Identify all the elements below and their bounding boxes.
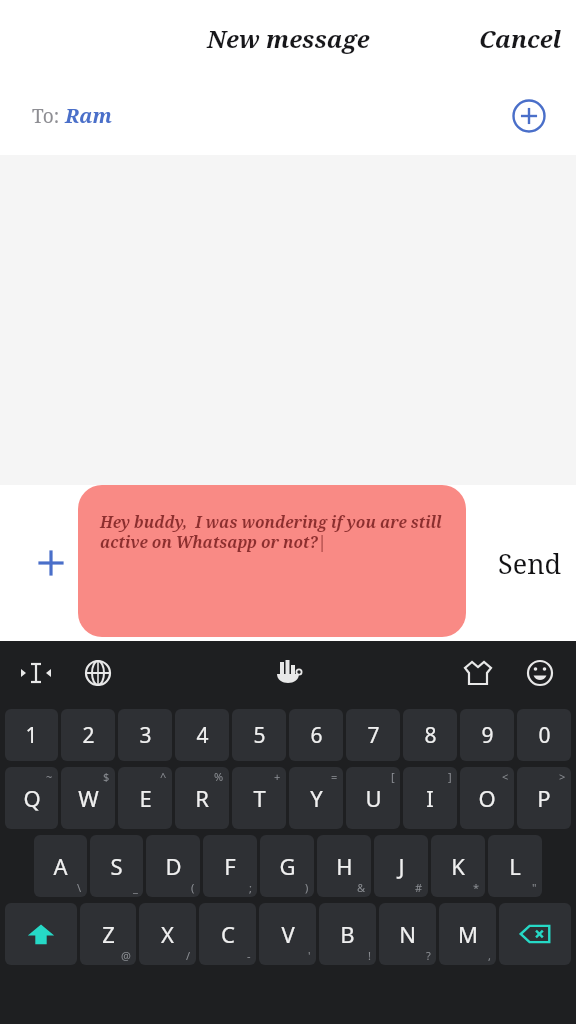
staticText: [	[391, 769, 395, 784]
button[interactable]: 6	[289, 709, 343, 761]
staticText: /	[186, 948, 191, 963]
button[interactable]: Add contact	[512, 99, 546, 133]
staticText: B	[340, 919, 355, 949]
button[interactable]: N	[379, 903, 436, 965]
button[interactable]: 0	[517, 709, 571, 761]
button[interactable]: Themes	[458, 653, 498, 693]
staticText: U	[365, 783, 382, 813]
staticText: 5	[253, 721, 266, 750]
staticText: 4	[196, 721, 209, 750]
staticText: 1	[25, 721, 38, 750]
button[interactable]: 2	[61, 709, 115, 761]
button[interactable]: U	[346, 767, 400, 829]
staticText: Cancel	[479, 22, 562, 55]
staticText: S	[110, 851, 123, 881]
button[interactable]: Hey buddy, I was wondering if you are st…	[78, 485, 466, 637]
button[interactable]: H	[317, 835, 371, 897]
staticText: ;	[249, 880, 252, 895]
button[interactable]: J	[374, 835, 428, 897]
button[interactable]: 7	[346, 709, 400, 761]
button[interactable]: S	[90, 835, 143, 897]
button[interactable]: 3	[118, 709, 172, 761]
button[interactable]: A	[34, 835, 87, 897]
staticText: ?	[426, 948, 431, 963]
staticText: (	[191, 880, 195, 895]
button[interactable]: 1	[5, 709, 58, 761]
button[interactable]: Change language	[78, 653, 118, 693]
button[interactable]: Cursor control	[16, 653, 56, 693]
button[interactable]: 8	[403, 709, 457, 761]
staticText: ]	[448, 769, 452, 784]
button[interactable]: E	[118, 767, 172, 829]
button[interactable]: Emoji	[520, 653, 560, 693]
staticText: Ram	[65, 102, 112, 129]
staticText: R	[195, 783, 209, 813]
button[interactable]: O	[460, 767, 514, 829]
staticText: I	[426, 783, 434, 813]
staticText: D	[165, 851, 182, 881]
staticText: Z	[102, 919, 115, 949]
button[interactable]: D	[146, 835, 200, 897]
button[interactable]: G	[260, 835, 314, 897]
staticText: Send	[498, 545, 562, 582]
staticText: A	[53, 851, 68, 881]
staticText: X	[161, 919, 174, 949]
button[interactable]: R	[175, 767, 229, 829]
staticText: )	[305, 880, 309, 895]
button[interactable]: Attach	[30, 542, 72, 584]
staticText: G	[279, 851, 296, 881]
staticText: Q	[23, 783, 41, 813]
button[interactable]: F	[203, 835, 257, 897]
staticText: 0	[538, 721, 551, 750]
staticText: To:	[32, 103, 65, 129]
staticText: Hey buddy, I was wondering if you are st…	[100, 511, 448, 553]
button[interactable]: Shift	[5, 903, 77, 965]
staticText: 9	[481, 721, 494, 750]
staticText: M	[458, 919, 478, 949]
button[interactable]: L	[488, 835, 542, 897]
staticText: T	[253, 783, 266, 813]
staticText: %	[214, 769, 224, 784]
button[interactable]: Q	[5, 767, 58, 829]
button[interactable]: W	[61, 767, 115, 829]
button[interactable]: V	[259, 903, 316, 965]
button[interactable]: New message	[207, 22, 370, 55]
staticText: N	[399, 919, 416, 949]
staticText: H	[336, 851, 353, 881]
staticText: &	[357, 880, 366, 895]
staticText: *	[473, 880, 480, 895]
button[interactable]: Y	[289, 767, 343, 829]
button[interactable]: I	[403, 767, 457, 829]
button[interactable]: To:	[32, 102, 112, 129]
staticText: "	[532, 880, 537, 895]
staticText: K	[451, 851, 465, 881]
button[interactable]: P	[517, 767, 571, 829]
staticText: P	[537, 783, 551, 813]
staticText: V	[281, 919, 295, 949]
staticText: !	[368, 948, 371, 963]
staticText: L	[509, 851, 521, 881]
staticText: F	[224, 851, 236, 881]
button[interactable]: Gesture typing	[268, 653, 308, 693]
staticText: <	[502, 769, 509, 784]
button[interactable]: K	[431, 835, 485, 897]
button[interactable]: T	[232, 767, 286, 829]
staticText: +	[274, 769, 281, 784]
button[interactable]: Send	[498, 545, 562, 582]
button[interactable]: C	[199, 903, 256, 965]
button[interactable]: X	[139, 903, 196, 965]
button[interactable]: M	[439, 903, 496, 965]
button[interactable]: B	[319, 903, 376, 965]
button[interactable]: Backspace	[499, 903, 571, 965]
staticText: O	[478, 783, 496, 813]
button[interactable]: Cancel	[479, 22, 562, 55]
staticText: 8	[424, 721, 437, 750]
button[interactable]: 4	[175, 709, 229, 761]
staticText: ,	[488, 948, 491, 963]
staticText: Y	[310, 783, 323, 813]
button[interactable]: Z	[80, 903, 136, 965]
staticText: ^	[160, 769, 167, 784]
button[interactable]: 9	[460, 709, 514, 761]
staticText: >	[559, 769, 566, 784]
button[interactable]: 5	[232, 709, 286, 761]
